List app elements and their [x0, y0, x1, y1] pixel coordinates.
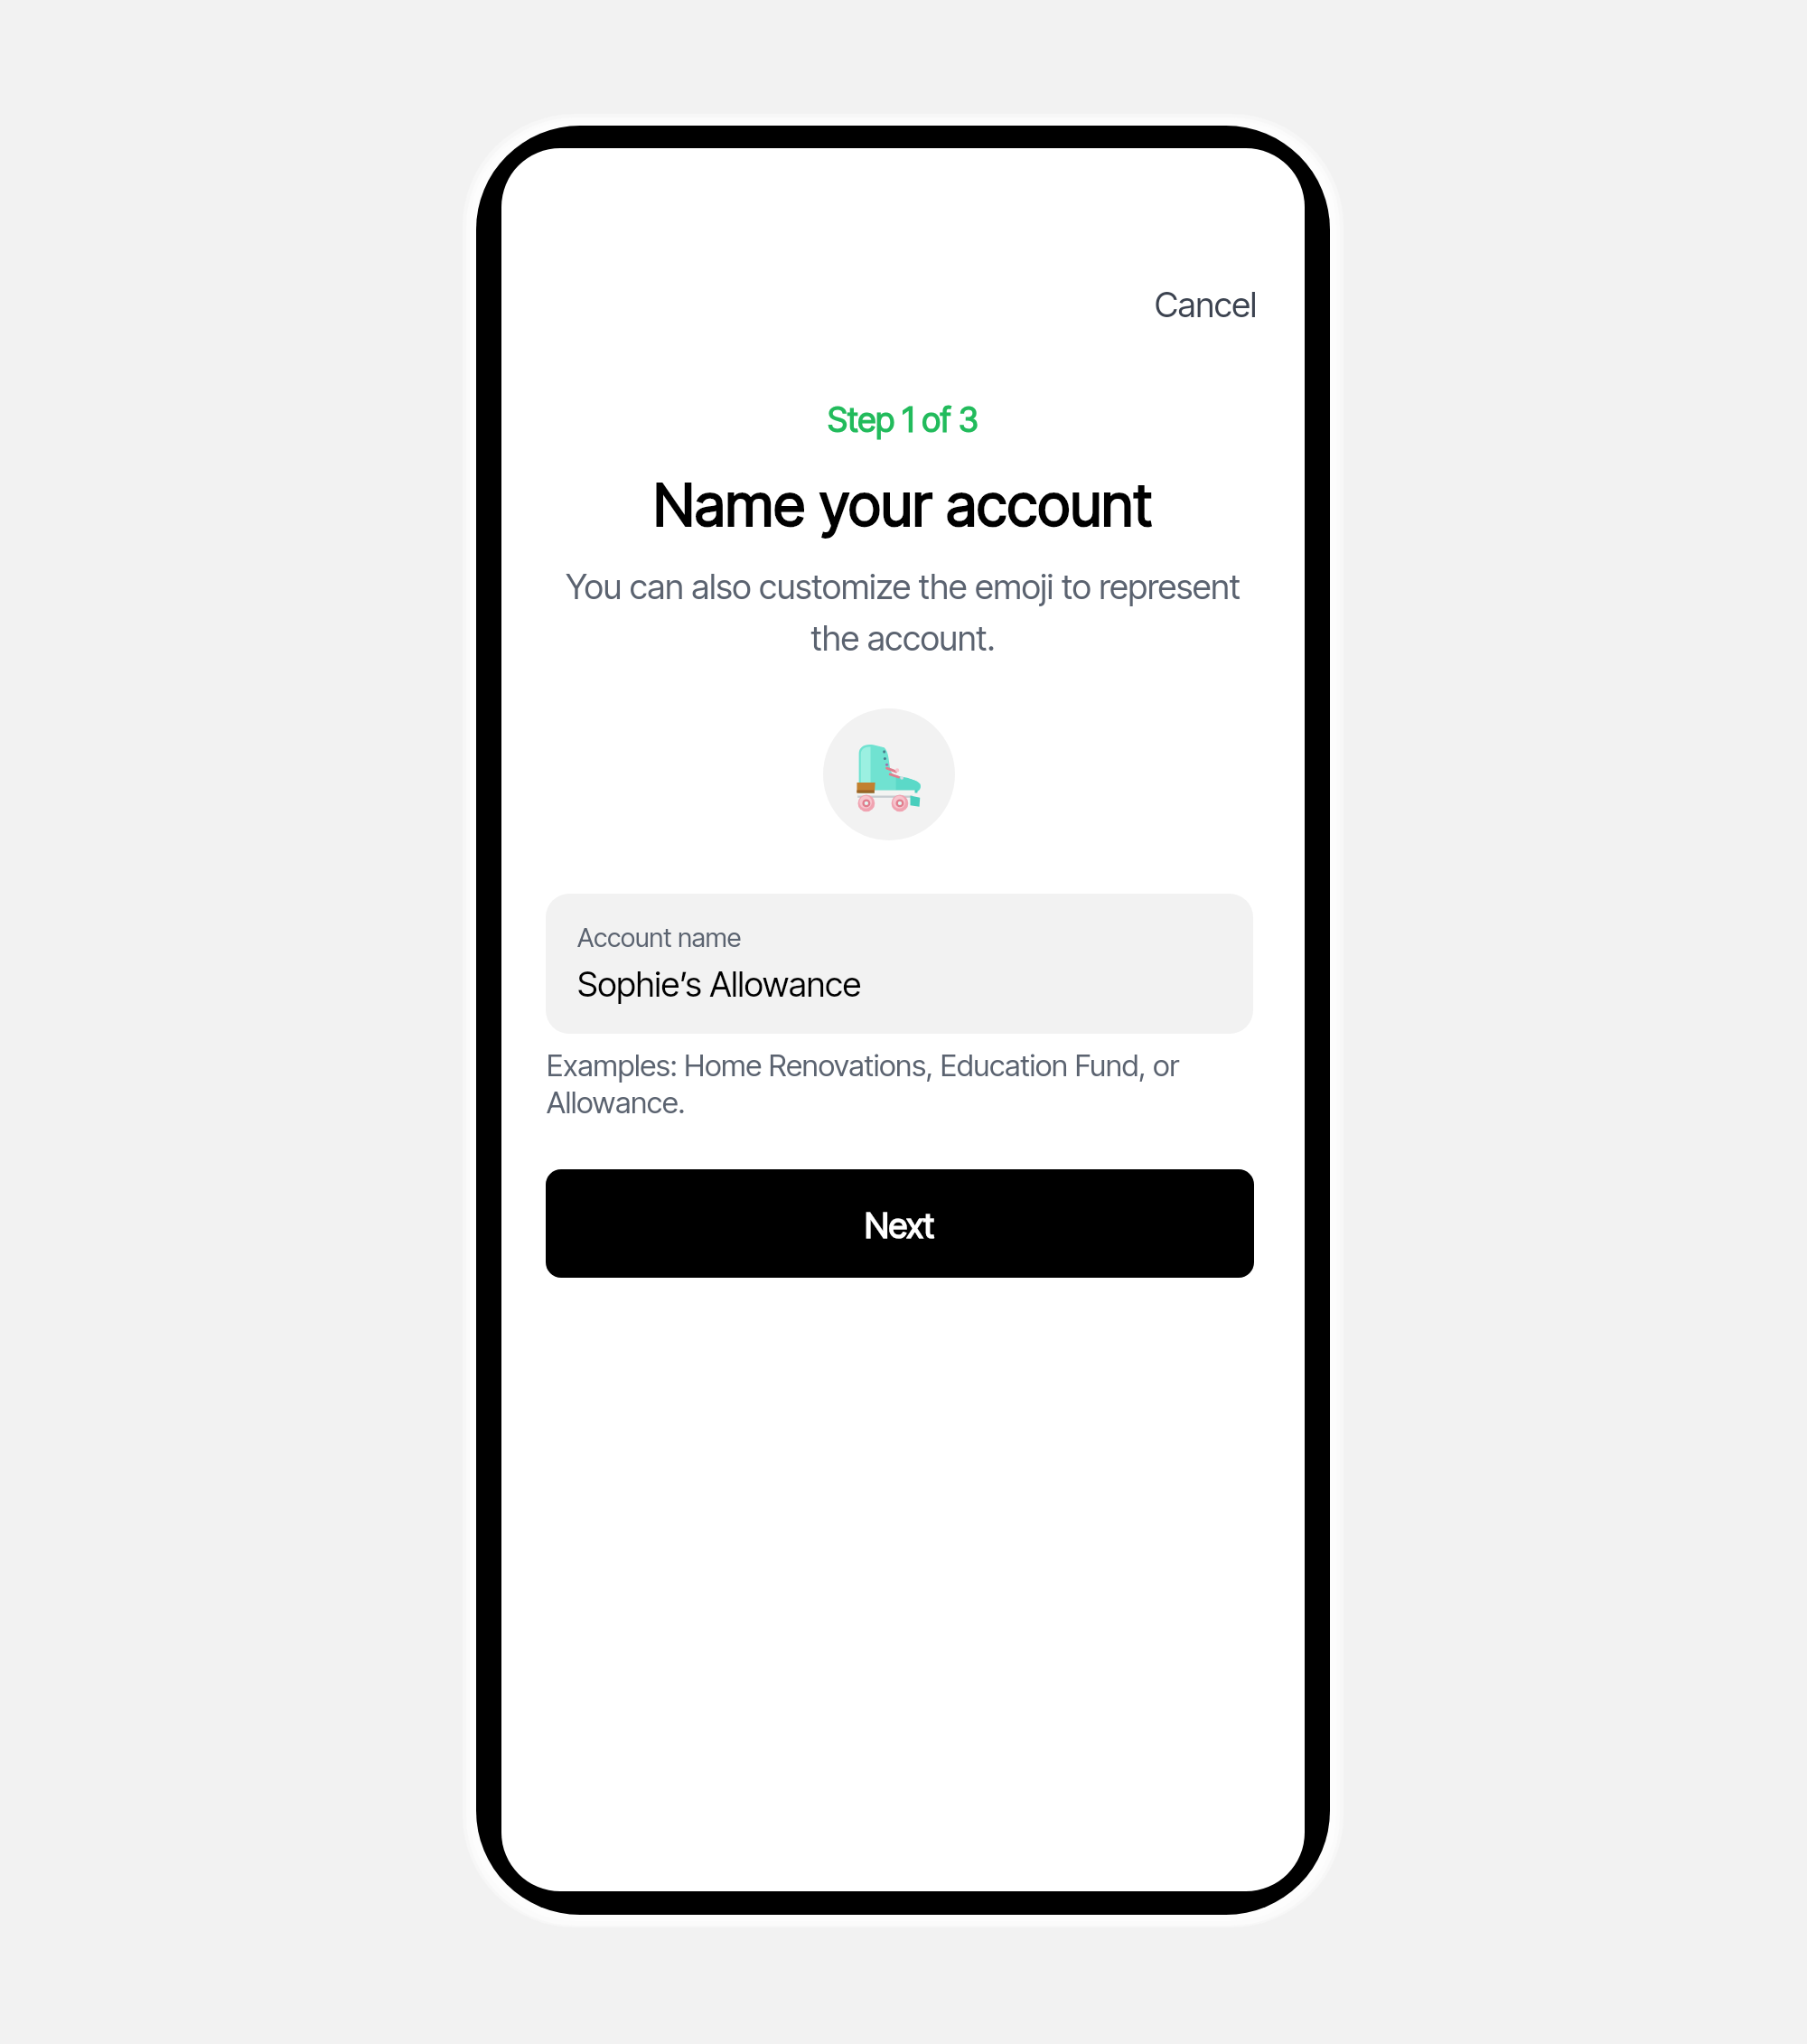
staticText: Step 1 of 3: [501, 399, 1305, 440]
staticText: Next: [865, 1205, 935, 1246]
staticText: You can also customize the emoji to repr…: [550, 566, 1256, 659]
staticText: Examples: Home Renovations, Education Fu…: [547, 1047, 1215, 1120]
button[interactable]: Next: [546, 1169, 1254, 1278]
staticText: Sophie’s Allowance: [577, 963, 862, 1005]
staticText: Account name: [577, 922, 742, 953]
staticText: Name your account: [501, 470, 1305, 539]
button[interactable]: Account name: [546, 894, 1253, 1034]
button[interactable]: Cancel: [1138, 271, 1274, 338]
staticText: Cancel: [1155, 284, 1258, 325]
button[interactable]: Choose emoji: [823, 708, 955, 840]
